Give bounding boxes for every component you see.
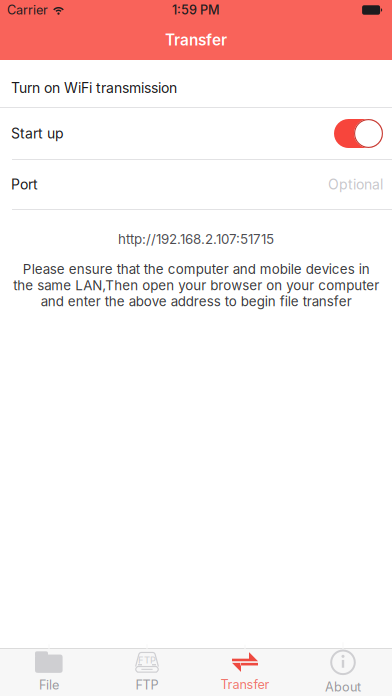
staticText: Transfer [165, 31, 227, 49]
staticText: Start up [11, 125, 64, 142]
button[interactable]: File [0, 649, 98, 696]
staticText: File [39, 677, 59, 693]
staticText: Optional [328, 176, 383, 193]
staticText: FTP [135, 677, 158, 693]
staticText: http://192.168.2.107:51715 [118, 231, 274, 247]
staticText: About [325, 679, 361, 695]
staticText: Carrier [7, 2, 48, 18]
button[interactable]: Start up [0, 108, 392, 159]
staticText: Please ensure that the computer and mobi… [13, 261, 379, 309]
staticText: 1:59 PM [172, 2, 220, 18]
button[interactable]: Port [0, 160, 392, 209]
button[interactable]: FTP [98, 649, 196, 696]
staticText: Port [11, 176, 38, 193]
button[interactable]: Turn on WiFi transmission [0, 60, 392, 107]
staticText: Turn on WiFi transmission [11, 79, 177, 96]
button[interactable]: About [294, 649, 392, 696]
button[interactable]: Transfer [196, 649, 294, 696]
staticText: Transfer [220, 677, 269, 692]
staticText: FTP [138, 654, 156, 666]
